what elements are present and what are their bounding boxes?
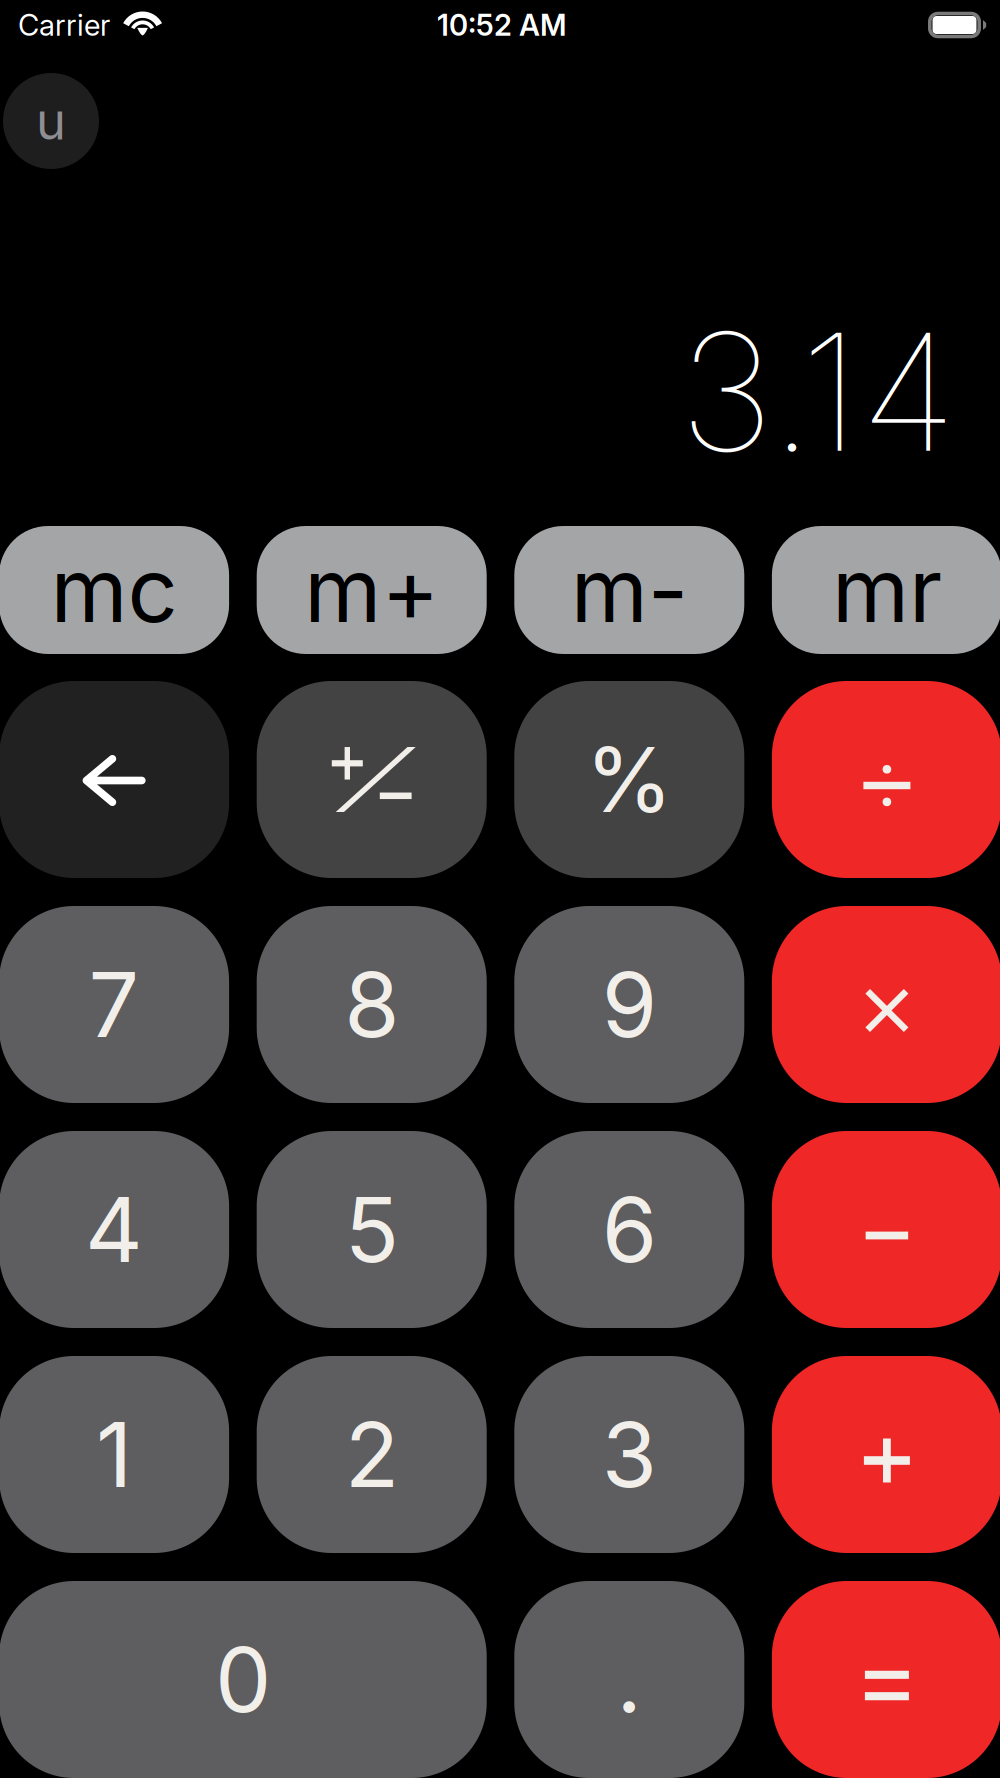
button[interactable]: Backspace: [0, 681, 229, 878]
staticText: 1: [96, 1400, 132, 1509]
staticText: mc: [51, 537, 178, 643]
button[interactable]: Add: [772, 1356, 1000, 1553]
button[interactable]: 2: [257, 1356, 487, 1553]
staticText: 4: [85, 1175, 143, 1284]
button[interactable]: 5: [257, 1131, 487, 1328]
staticText: .: [616, 1625, 642, 1734]
button[interactable]: 8: [257, 906, 487, 1103]
staticText: u: [36, 90, 66, 152]
button[interactable]: 6: [514, 1131, 744, 1328]
button[interactable]: m+: [257, 526, 487, 654]
staticText: 3.14: [679, 293, 957, 490]
staticText: 6: [602, 1175, 657, 1284]
button[interactable]: 0: [0, 1581, 487, 1778]
button[interactable]: mc: [0, 526, 229, 654]
button[interactable]: m-: [514, 526, 744, 654]
button[interactable]: Toggle sign: [257, 681, 487, 878]
button[interactable]: 9: [514, 906, 744, 1103]
button[interactable]: Equals: [772, 1581, 1000, 1778]
staticText: mr: [832, 537, 942, 643]
staticText: 10:52 AM: [437, 7, 567, 43]
button[interactable]: 7: [0, 906, 229, 1103]
button[interactable]: Account: [3, 73, 99, 169]
staticText: %: [585, 725, 673, 834]
staticText: Carrier: [18, 7, 110, 43]
staticText: m+: [304, 537, 439, 643]
staticText: 2: [345, 1400, 399, 1509]
button[interactable]: Multiply: [772, 906, 1000, 1103]
staticText: 8: [344, 950, 399, 1059]
button[interactable]: %: [514, 681, 744, 878]
button[interactable]: Subtract: [772, 1131, 1000, 1328]
button[interactable]: 1: [0, 1356, 229, 1553]
button[interactable]: Divide: [772, 681, 1000, 878]
button[interactable]: .: [514, 1581, 744, 1778]
staticText: 9: [602, 950, 657, 1059]
staticText: 0: [215, 1625, 271, 1734]
staticText: 5: [345, 1175, 399, 1284]
button[interactable]: mr: [772, 526, 1000, 654]
button[interactable]: 4: [0, 1131, 229, 1328]
button[interactable]: 3: [514, 1356, 744, 1553]
staticText: m-: [571, 537, 688, 643]
staticText: 3: [602, 1400, 657, 1509]
staticText: 7: [89, 950, 140, 1059]
